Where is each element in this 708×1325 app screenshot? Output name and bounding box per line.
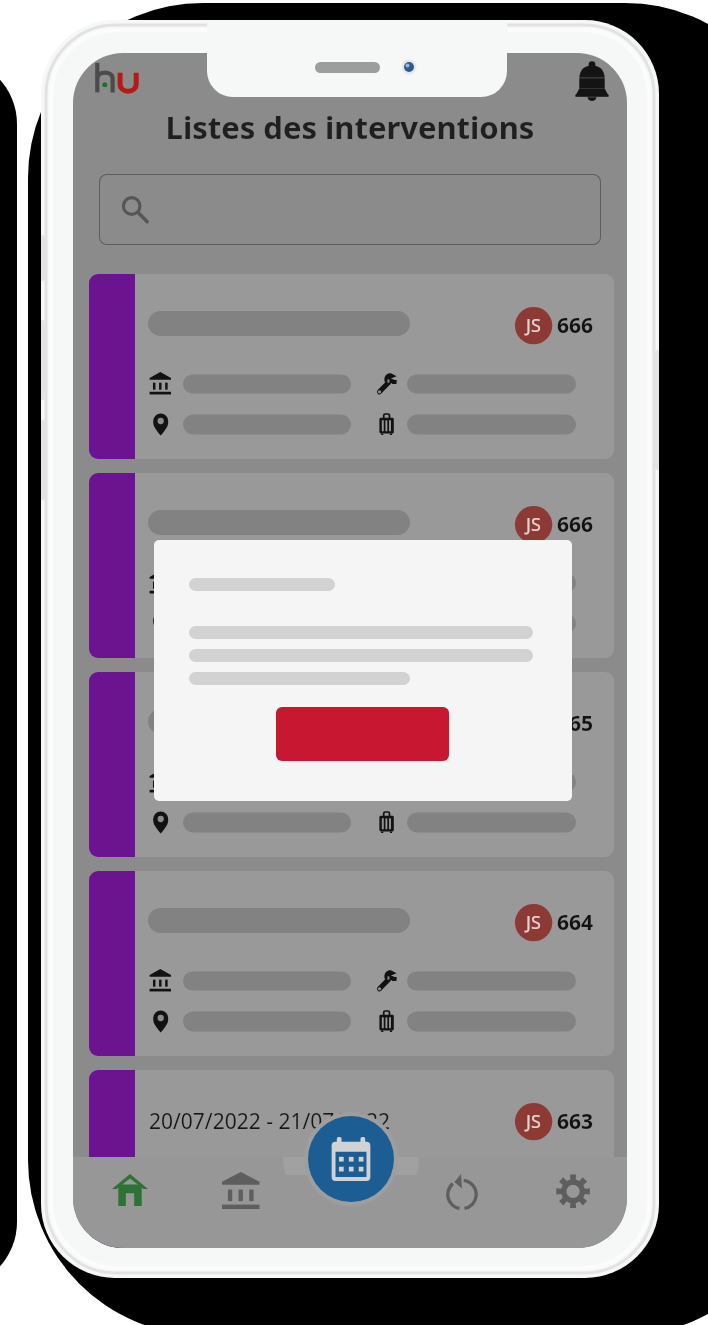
staticText: Listes des interventions xyxy=(73,106,627,148)
staticText: 666 xyxy=(557,311,594,336)
button[interactable]: Notifications xyxy=(575,61,609,101)
staticText: 666 xyxy=(557,510,594,535)
button[interactable]: JS xyxy=(89,473,614,658)
staticText: 663 xyxy=(557,1107,594,1132)
button[interactable]: Calendar xyxy=(308,1116,394,1202)
staticText: 664 xyxy=(557,908,594,933)
button[interactable]: hu logo xyxy=(95,62,141,94)
button[interactable]: Settings xyxy=(539,1157,607,1225)
button[interactable]: Refresh xyxy=(428,1158,496,1226)
button[interactable]: Home xyxy=(96,1156,164,1224)
button[interactable]: JS xyxy=(89,672,614,857)
button[interactable]: JS xyxy=(89,871,614,1056)
button[interactable]: Search xyxy=(99,174,601,245)
staticText: JS xyxy=(526,313,541,338)
staticText: 665 xyxy=(557,709,594,734)
button[interactable]: Institutions xyxy=(207,1157,275,1225)
staticText: JS xyxy=(526,512,541,537)
staticText: 20/07/2022 - 21/07/2022 xyxy=(149,1107,391,1132)
button[interactable]: JS xyxy=(89,274,614,459)
staticText: JS xyxy=(526,910,541,935)
button[interactable]: JS xyxy=(89,1070,614,1248)
staticText: JS xyxy=(526,1109,541,1134)
button[interactable]: Confirm xyxy=(276,707,449,761)
